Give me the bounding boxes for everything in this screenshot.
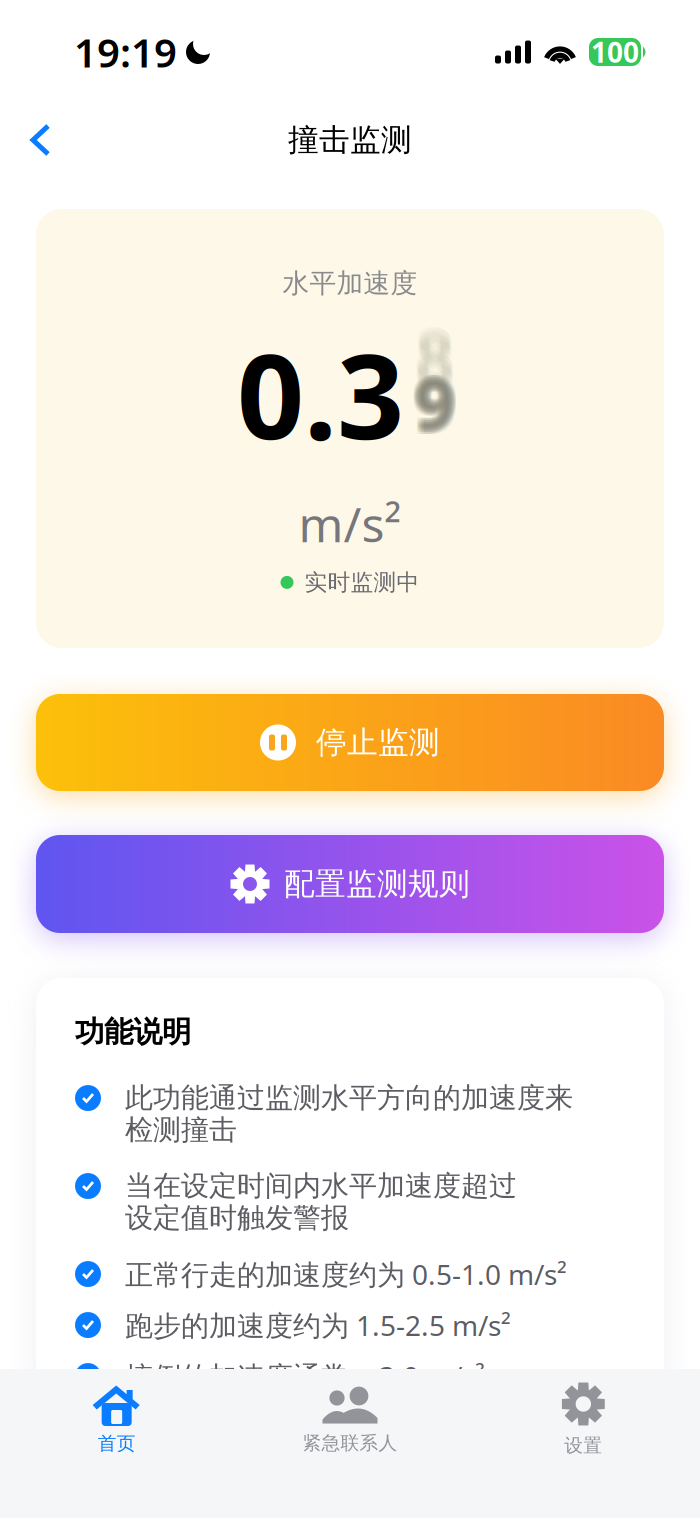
staticText: 8 xyxy=(415,311,455,404)
staticText: 当在设定时间内水平加速度超过 xyxy=(125,1169,517,1203)
staticText: 正常行走的加速度约为 0.5-1.0 m/s² xyxy=(125,1255,567,1293)
staticText: 9 xyxy=(415,355,455,447)
staticText: 9 xyxy=(417,360,457,453)
staticText: 设定值时触发警报 xyxy=(125,1201,349,1235)
staticText: 9 xyxy=(415,359,455,451)
staticText: 9 xyxy=(413,359,453,451)
staticText: 摔倒的加速度通常 > 3.0 m/s² xyxy=(125,1357,485,1395)
staticText: 此功能通过监测水平方向的加速度来 xyxy=(125,1081,573,1115)
staticText: 9 xyxy=(412,353,452,445)
staticText: 9 xyxy=(413,360,453,453)
staticText: 9 xyxy=(412,355,452,447)
staticText: 检测撞击 xyxy=(125,1113,237,1147)
staticText: 设置 xyxy=(564,1434,602,1457)
staticText: 9 xyxy=(415,357,455,449)
staticText: 首页 xyxy=(98,1432,136,1455)
staticText: 9 xyxy=(418,359,458,451)
staticText: m/s² xyxy=(298,492,401,555)
staticText: 9 xyxy=(412,359,452,451)
button[interactable]: 返回 xyxy=(13,110,69,170)
staticText: 水平加速度 xyxy=(282,267,417,300)
staticText: 9 xyxy=(417,353,457,445)
staticText: 9 xyxy=(417,359,457,451)
staticText: 19:19 xyxy=(74,25,177,78)
staticText: 8 xyxy=(414,315,454,407)
staticText: 9 xyxy=(412,357,452,449)
staticText: 实时监测中 xyxy=(304,568,419,596)
button[interactable]: 配置监测规则 xyxy=(36,835,664,933)
staticText: 配置监测规则 xyxy=(284,865,470,903)
staticText: 9 xyxy=(413,355,453,447)
staticText: 停止监测 xyxy=(316,724,440,761)
button[interactable]: 紧急联系人 xyxy=(233,1384,467,1454)
button[interactable]: 设置 xyxy=(467,1382,700,1457)
staticText: 8 xyxy=(414,310,454,402)
staticText: 9 xyxy=(417,355,457,447)
staticText: 9 xyxy=(418,360,458,453)
staticText: 紧急联系人 xyxy=(302,1431,397,1454)
staticText: 9 xyxy=(418,355,458,447)
staticText: 9 xyxy=(413,353,453,445)
button[interactable]: 首页 xyxy=(0,1384,233,1455)
staticText: 0.3 xyxy=(237,316,404,472)
staticText: 9 xyxy=(415,353,455,445)
staticText: 9 xyxy=(413,357,453,449)
staticText: 8 xyxy=(415,306,455,398)
staticText: 8 xyxy=(416,308,456,400)
staticText: 9 xyxy=(418,357,458,449)
staticText: 9 xyxy=(418,353,458,445)
staticText: 8 xyxy=(416,318,456,410)
staticText: 8 xyxy=(414,305,454,397)
staticText: 9 xyxy=(417,357,457,449)
staticText: 9 xyxy=(415,360,455,453)
staticText: 100 xyxy=(591,33,639,71)
staticText: 8 xyxy=(416,313,456,405)
staticText: 8 xyxy=(415,317,455,409)
staticText: 9 xyxy=(412,360,452,453)
staticText: 跑步的加速度约为 1.5-2.5 m/s² xyxy=(125,1306,511,1344)
staticText: 撞击监测 xyxy=(288,121,412,159)
staticText: 功能说明 xyxy=(75,1014,191,1050)
button[interactable]: 停止监测 xyxy=(36,694,664,791)
